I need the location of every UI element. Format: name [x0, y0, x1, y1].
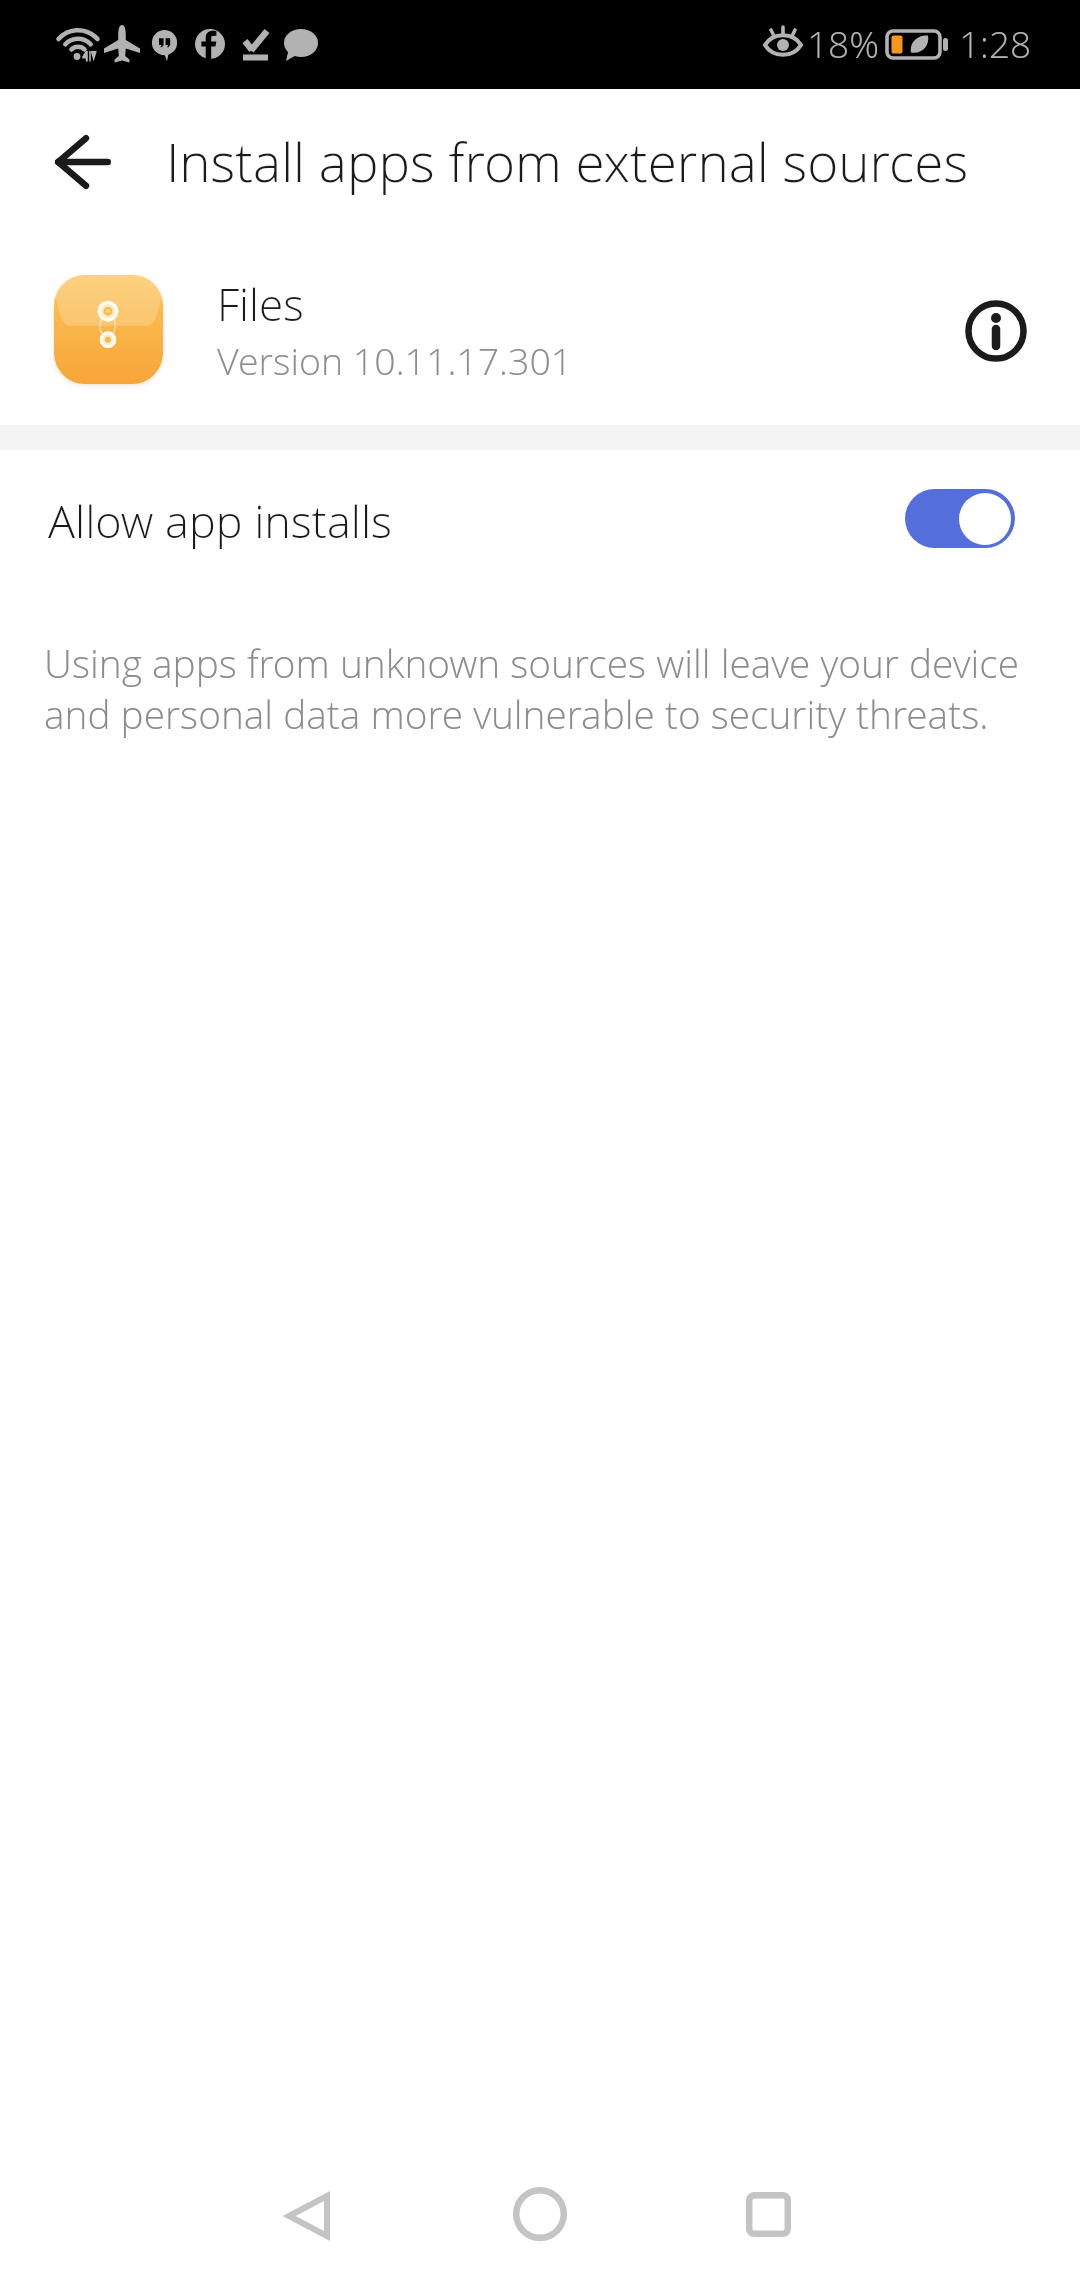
button[interactable]: Recent apps	[700, 2146, 836, 2280]
button[interactable]: Back	[240, 2148, 376, 2280]
button[interactable]: Navigate up	[35, 114, 131, 210]
staticText: Version 10.11.17.301	[217, 335, 573, 386]
button[interactable]: Home	[472, 2146, 608, 2280]
staticText: Install apps from external sources	[166, 125, 969, 197]
staticText: Using apps from unknown sources will lea…	[44, 637, 1034, 740]
button[interactable]: Allow app installs, on	[905, 489, 1015, 548]
staticText: 1:28	[959, 18, 1032, 68]
button[interactable]: App info	[948, 283, 1044, 379]
staticText: 18%	[807, 18, 880, 68]
button[interactable]: Files	[0, 241, 1080, 425]
staticText: Files	[217, 274, 304, 334]
button[interactable]: Allow app installs	[0, 450, 1080, 595]
staticText: Allow app installs	[48, 490, 393, 551]
